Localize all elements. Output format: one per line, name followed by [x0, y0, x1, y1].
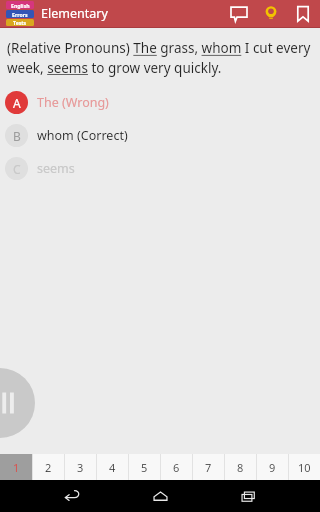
staticText: 4	[109, 460, 116, 475]
button[interactable]: 4	[96, 454, 128, 480]
staticText: English	[11, 2, 30, 9]
button[interactable]: 8	[224, 454, 256, 480]
button[interactable]: A	[0, 86, 320, 119]
button[interactable]: C	[0, 152, 320, 185]
button[interactable]: 10	[288, 454, 320, 480]
button[interactable]: Pause	[0, 368, 35, 438]
button[interactable]: 9	[256, 454, 288, 480]
button[interactable]: Recents	[232, 480, 264, 512]
button[interactable]: 1	[0, 454, 32, 480]
staticText: 7	[205, 460, 212, 475]
button[interactable]: 3	[64, 454, 96, 480]
staticText: B	[13, 128, 21, 144]
button[interactable]: B	[0, 119, 320, 152]
button[interactable]: Bookmark	[291, 2, 315, 26]
staticText: Elementary	[41, 5, 108, 22]
staticText: seems	[37, 160, 75, 177]
button[interactable]: 6	[160, 454, 192, 480]
staticText: The (Wrong)	[37, 94, 109, 111]
button[interactable]: Back	[56, 480, 88, 512]
button[interactable]: English Errors Tests	[5, 1, 35, 26]
staticText: 3	[77, 460, 84, 475]
staticText: 5	[141, 460, 148, 475]
staticText: (Relative Pronouns) The grass, whom I cu…	[7, 39, 313, 77]
button[interactable]: 5	[128, 454, 160, 480]
staticText: 2	[45, 460, 52, 475]
staticText: 6	[173, 460, 180, 475]
staticText: whom (Correct)	[37, 127, 128, 144]
button[interactable]: Hint	[259, 2, 283, 26]
button[interactable]: 7	[192, 454, 224, 480]
button[interactable]: 2	[32, 454, 64, 480]
button[interactable]: Comments	[227, 2, 251, 26]
button[interactable]: Home	[144, 480, 176, 512]
staticText: 10	[298, 460, 311, 475]
staticText: A	[13, 95, 21, 111]
staticText: 9	[269, 460, 276, 475]
staticText: 1	[13, 460, 20, 475]
staticText: Errors	[12, 11, 28, 18]
staticText: Tests	[13, 19, 27, 26]
staticText: 8	[237, 460, 244, 475]
staticText: C	[13, 161, 21, 177]
